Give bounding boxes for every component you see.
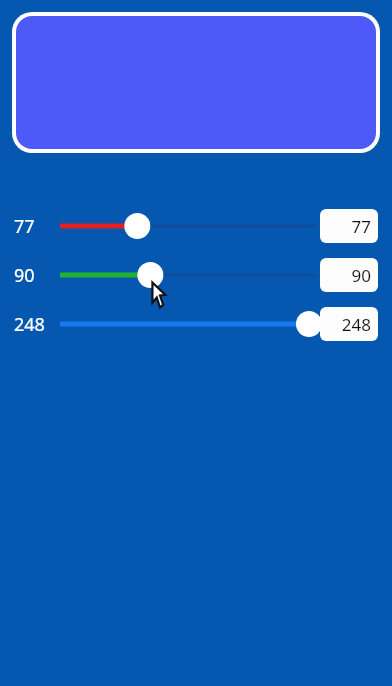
button[interactable]: Slider 77 bbox=[58, 210, 320, 242]
button[interactable]: 77 bbox=[320, 209, 378, 243]
staticText: 77 bbox=[14, 214, 35, 239]
staticText: 248 bbox=[14, 312, 45, 337]
staticText: 248 bbox=[341, 313, 371, 336]
staticText: 77 bbox=[351, 215, 371, 238]
button[interactable]: Slider 90 bbox=[58, 259, 320, 291]
staticText: 90 bbox=[351, 264, 371, 287]
button[interactable]: 90 bbox=[320, 258, 378, 292]
button[interactable]: Colour preview bbox=[16, 16, 376, 149]
button[interactable]: Slider 248 bbox=[58, 308, 320, 340]
button[interactable]: 248 bbox=[320, 307, 378, 341]
staticText: 90 bbox=[14, 263, 35, 288]
